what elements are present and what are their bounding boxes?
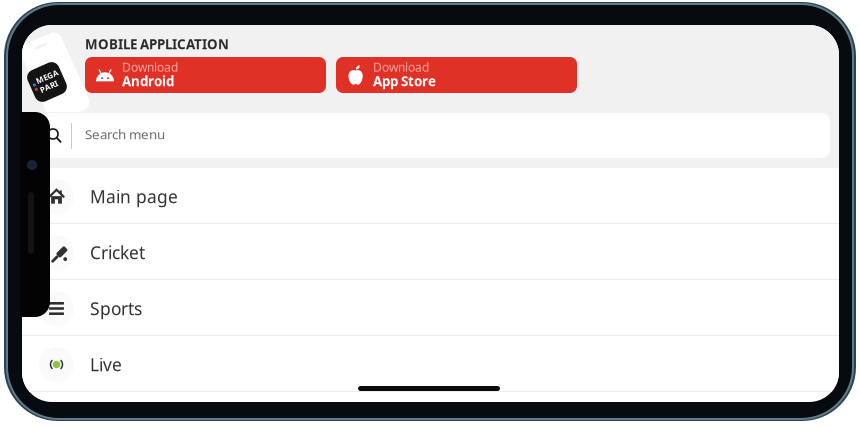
staticText: Search menu xyxy=(85,125,165,143)
staticText: Download xyxy=(122,59,178,75)
button[interactable]: Download xyxy=(336,57,577,93)
staticText: Sports xyxy=(90,297,142,320)
staticText: MEGA xyxy=(37,72,61,82)
button[interactable]: Download xyxy=(85,57,326,93)
staticText: App Store xyxy=(373,72,436,90)
button[interactable]: Sports xyxy=(22,280,839,336)
staticText: PARI xyxy=(37,81,56,92)
button[interactable]: Main page xyxy=(22,168,839,224)
staticText: Main page xyxy=(90,185,178,208)
staticText: MOBILE APPLICATION xyxy=(85,35,229,53)
button[interactable]: Search menu xyxy=(26,113,830,158)
staticText: Live xyxy=(90,353,122,376)
button[interactable]: Live xyxy=(22,336,839,392)
staticText: Android xyxy=(122,72,174,90)
button[interactable]: Cricket xyxy=(22,224,839,280)
staticText: Download xyxy=(373,59,429,75)
staticText: Cricket xyxy=(90,241,145,264)
